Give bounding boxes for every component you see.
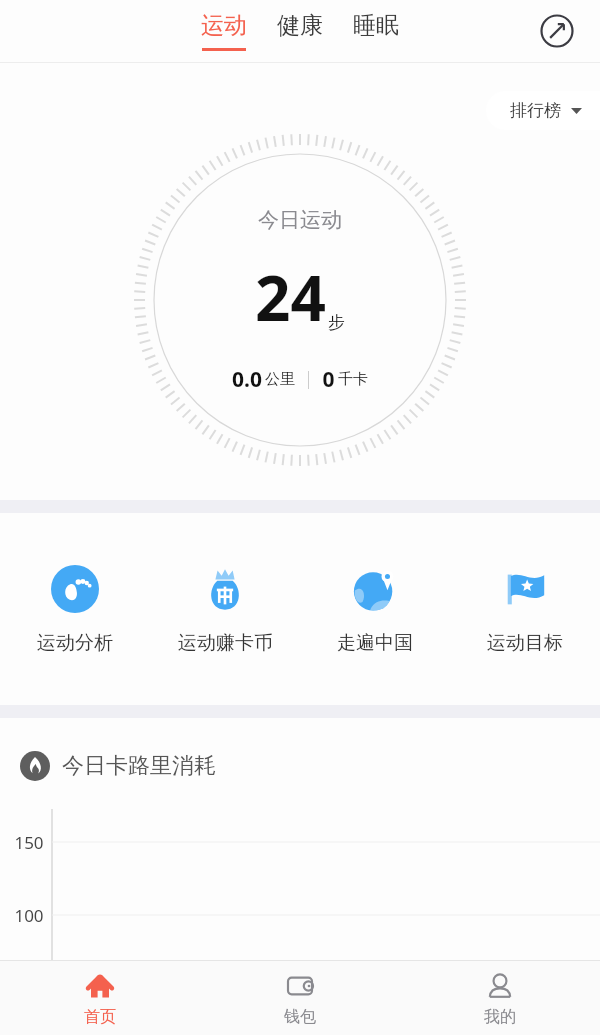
button[interactable]: 健康 [273,11,327,51]
button[interactable]: 睡眠 [349,11,403,51]
button[interactable]: 运动赚卡币 [150,513,300,705]
button[interactable]: 我的 [400,961,600,1035]
button[interactable]: Share [536,10,578,52]
button[interactable]: 排行榜 [486,91,600,130]
staticText: 步 [328,312,345,333]
staticText: 公里 [265,370,295,389]
button[interactable]: 运动分析 [0,513,150,705]
staticText: 100 [14,904,44,927]
staticText: 0 [322,365,335,394]
staticText: 运动目标 [487,631,563,655]
staticText: 0.0 [232,365,262,394]
staticText: 钱包 [284,1007,316,1027]
staticText: 排行榜 [510,100,561,121]
staticText: 今日卡路里消耗 [62,752,216,780]
button[interactable]: 走遍中国 [300,513,450,705]
staticText: 24 [255,255,326,339]
staticText: 运动分析 [37,631,113,655]
staticText: 睡眠 [353,11,399,40]
button[interactable]: 首页 [0,961,200,1035]
button[interactable]: 钱包 [200,961,400,1035]
button[interactable]: 运动 [197,11,251,51]
button[interactable]: 运动目标 [450,513,600,705]
staticText: 今日运动 [258,207,342,233]
staticText: 运动 [201,11,247,40]
staticText: 运动赚卡币 [178,631,273,655]
staticText: 千卡 [338,370,368,389]
staticText: 首页 [84,1007,116,1027]
staticText: 走遍中国 [337,631,413,655]
staticText: 健康 [277,11,323,40]
staticText: 我的 [484,1007,516,1027]
staticText: 150 [14,831,44,854]
